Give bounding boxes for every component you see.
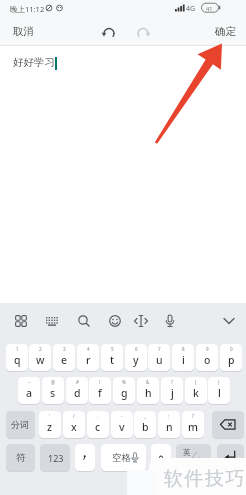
staticText: ~ — [28, 379, 31, 385]
button[interactable]: 分词 — [6, 411, 35, 438]
staticText: j — [171, 386, 174, 400]
staticText: l — [218, 386, 221, 400]
staticText: 9 — [206, 346, 209, 352]
staticText: 1 — [16, 346, 19, 352]
staticText: o — [204, 353, 211, 367]
staticText: c — [95, 420, 101, 434]
staticText: 3 — [63, 346, 66, 352]
staticText: 8 — [182, 346, 185, 352]
button[interactable]: 取消 — [0, 21, 42, 42]
staticText: 123 — [48, 452, 64, 464]
staticText: a — [26, 386, 33, 400]
staticText: v — [119, 420, 125, 434]
staticText: k — [193, 386, 199, 400]
staticText: x — [71, 420, 77, 434]
staticText: ' — [49, 413, 51, 419]
button[interactable]: ~ — [18, 377, 40, 404]
staticText: f — [98, 386, 102, 400]
button[interactable]: ( — [185, 377, 207, 404]
staticText: 4G — [186, 4, 196, 14]
button[interactable]: 9 — [196, 344, 218, 371]
button[interactable]: 2 — [29, 344, 51, 371]
button[interactable] — [75, 444, 95, 471]
staticText: e — [61, 353, 68, 367]
staticText: w — [36, 353, 45, 367]
button[interactable]: % — [113, 377, 135, 404]
button[interactable] — [151, 444, 171, 471]
button[interactable]: / — [63, 411, 85, 438]
staticText: - — [121, 413, 123, 419]
staticText: / — [73, 413, 75, 419]
staticText: _ — [144, 413, 146, 419]
staticText: @ — [51, 379, 56, 385]
staticText: i — [182, 353, 185, 367]
button[interactable]: 6 — [125, 344, 147, 371]
staticText: s — [50, 386, 56, 400]
button[interactable]: 3 — [53, 344, 75, 371]
button[interactable]: 空格 — [101, 444, 146, 471]
staticText: d — [74, 386, 81, 400]
button[interactable]: 英 — [176, 444, 211, 471]
staticText: 6 — [135, 346, 138, 352]
staticText: 英 — [183, 448, 191, 457]
staticText: % — [122, 379, 126, 385]
button[interactable] — [217, 444, 244, 471]
staticText: h — [145, 386, 152, 400]
staticText: m — [188, 420, 198, 434]
button[interactable]: 0 — [220, 344, 242, 371]
button[interactable]: 4 — [77, 344, 99, 371]
button[interactable]: 123 — [40, 444, 70, 471]
staticText: ) — [218, 379, 220, 385]
button[interactable]: 确定 — [207, 21, 246, 42]
button[interactable]: . — [87, 411, 109, 438]
staticText: r — [86, 353, 91, 367]
staticText: 0 — [230, 346, 233, 352]
staticText: g — [121, 386, 128, 400]
button[interactable]: 1 — [6, 344, 28, 371]
staticText: z — [47, 420, 53, 434]
button[interactable]: - — [111, 411, 133, 438]
staticText: & — [146, 379, 150, 385]
button[interactable]: 5 — [101, 344, 123, 371]
staticText: p — [228, 353, 235, 367]
staticText: 41 — [206, 5, 213, 12]
staticText: 取消 — [13, 25, 34, 38]
staticText: # — [76, 379, 79, 385]
staticText: 好好学习 — [13, 56, 55, 69]
staticText: b — [142, 420, 149, 434]
button[interactable]: & — [137, 377, 159, 404]
staticText: 2 — [39, 346, 42, 352]
staticText: ? — [192, 413, 194, 419]
staticText: t — [110, 353, 115, 367]
button[interactable]: ? — [182, 411, 204, 438]
button[interactable]: 7 — [148, 344, 170, 371]
button[interactable]: ! — [89, 377, 111, 404]
button[interactable]: _ — [134, 411, 156, 438]
staticText: ( — [195, 379, 197, 385]
staticText: 空格 — [112, 452, 131, 464]
staticText: 中 — [196, 456, 204, 465]
staticText: 分词 — [11, 419, 29, 430]
staticText: : — [168, 413, 170, 419]
staticText: ? — [171, 379, 173, 385]
button[interactable]: : — [158, 411, 180, 438]
button[interactable]: ' — [39, 411, 61, 438]
button[interactable]: # — [66, 377, 88, 404]
staticText: y — [133, 353, 139, 367]
button[interactable] — [212, 411, 244, 438]
staticText: 5 — [111, 346, 114, 352]
button[interactable]: @ — [42, 377, 64, 404]
staticText: 软件技巧 — [163, 467, 245, 491]
staticText: 符 — [16, 452, 26, 464]
staticText: ! — [99, 379, 101, 385]
button[interactable]: 8 — [172, 344, 194, 371]
staticText: 确定 — [215, 25, 236, 38]
button[interactable]: ) — [208, 377, 230, 404]
staticText: 7 — [158, 346, 161, 352]
staticText: 晚上11:12 — [10, 4, 45, 14]
button[interactable]: ? — [161, 377, 183, 404]
staticText: u — [156, 353, 163, 367]
button[interactable]: 符 — [6, 444, 35, 471]
staticText: 4 — [87, 346, 90, 352]
staticText: n — [166, 420, 173, 434]
